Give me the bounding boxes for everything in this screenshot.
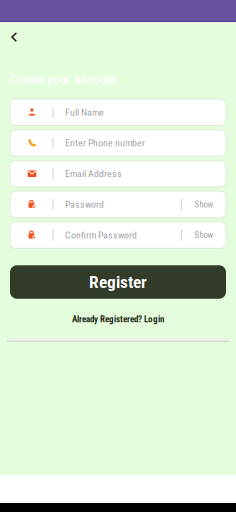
button[interactable]: Back — [0, 28, 27, 46]
button[interactable]: Register — [10, 265, 226, 299]
staticText: Enter Phone number — [65, 137, 145, 149]
staticText: Confirm Password — [65, 229, 137, 241]
staticText: Already Registered? Login — [72, 314, 164, 325]
staticText: Show — [194, 199, 213, 209]
staticText: Show — [194, 230, 213, 240]
button[interactable]: Show — [182, 191, 226, 218]
button[interactable]: Already Registered? Login — [62, 311, 174, 327]
button[interactable]: Show — [182, 222, 226, 248]
staticText: Password — [65, 199, 104, 210]
staticText: Email Address — [65, 168, 122, 179]
staticText: Create your Account — [10, 72, 116, 87]
staticText: Register — [89, 272, 147, 292]
staticText: Full Name — [65, 106, 104, 118]
